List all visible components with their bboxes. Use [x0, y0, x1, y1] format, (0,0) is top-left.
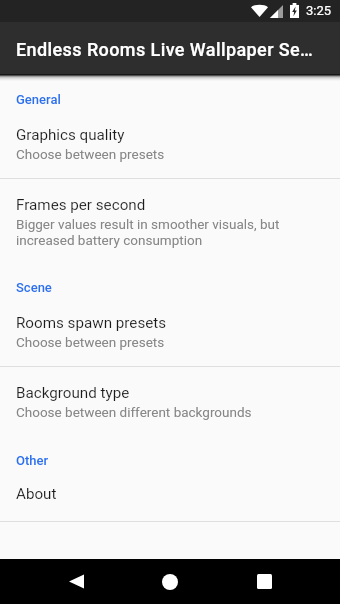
- button[interactable]: Back: [45, 559, 107, 604]
- staticText: Choose between presets: [16, 146, 324, 162]
- button[interactable]: Home: [139, 559, 201, 604]
- staticText: Graphics quality: [16, 126, 324, 144]
- staticText: Choose between different backgrounds: [16, 404, 324, 420]
- button[interactable]: [0, 444, 340, 521]
- button[interactable]: [0, 179, 340, 266]
- staticText: Scene: [16, 280, 324, 295]
- staticText: 3:25: [306, 3, 332, 18]
- button[interactable]: [0, 78, 340, 178]
- staticText: Bigger values result in smoother visuals…: [16, 216, 320, 248]
- button[interactable]: [0, 367, 340, 443]
- button[interactable]: [0, 267, 340, 366]
- button[interactable]: Recents: [233, 559, 295, 604]
- staticText: General: [16, 92, 324, 107]
- staticText: Other: [16, 453, 324, 468]
- staticText: About: [16, 485, 324, 503]
- staticText: Choose between presets: [16, 334, 324, 350]
- staticText: Frames per second: [16, 196, 324, 214]
- staticText: Rooms spawn presets: [16, 314, 324, 332]
- staticText: Endless Rooms Live Wallpaper Se…: [16, 39, 314, 60]
- staticText: Background type: [16, 384, 324, 402]
